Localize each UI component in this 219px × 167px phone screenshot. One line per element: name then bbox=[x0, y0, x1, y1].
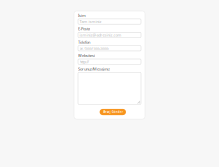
staticText: Mesaj Gönder bbox=[103, 110, 123, 114]
staticText: E-Posta bbox=[78, 26, 90, 31]
staticText: ör. (555) 555-5555 bbox=[80, 46, 109, 51]
staticText: Websitesi bbox=[78, 53, 95, 58]
staticText: Tam isminiz bbox=[80, 19, 102, 24]
staticText: İsim bbox=[78, 13, 86, 18]
button[interactable]: Mesaj Gönder bbox=[100, 109, 126, 115]
staticText: Sorunuz/Mesajınız bbox=[78, 66, 110, 71]
button[interactable]: http:// bbox=[78, 59, 141, 64]
staticText: http:// bbox=[80, 59, 89, 64]
staticText: Telefon bbox=[78, 39, 90, 45]
button[interactable]: ör. (555) 555-5555 bbox=[78, 46, 141, 51]
button[interactable]: isminiz@adresiniz.com bbox=[78, 32, 141, 38]
button[interactable]: Sorunuz/Mesajınız bbox=[78, 72, 141, 104]
button[interactable]: Tam isminiz bbox=[78, 19, 141, 24]
staticText: isminiz@adresiniz.com bbox=[80, 32, 122, 38]
